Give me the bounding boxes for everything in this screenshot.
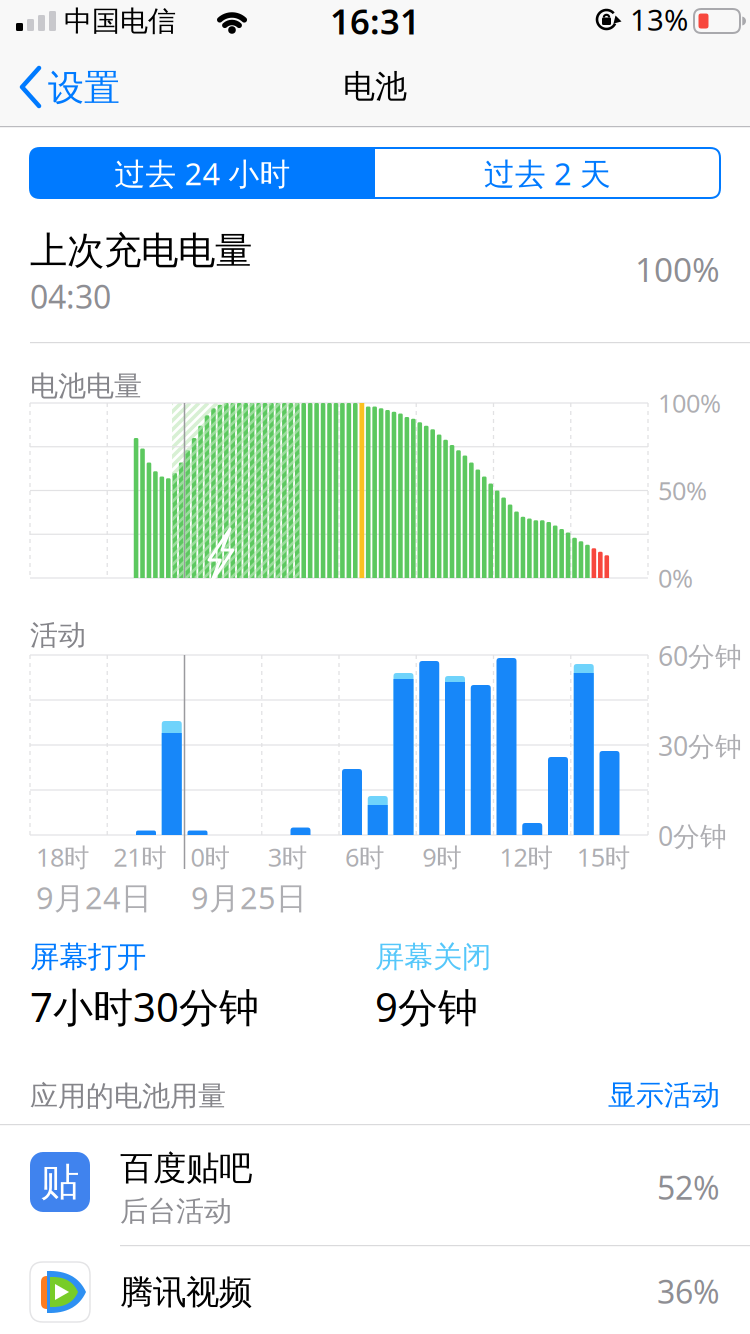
staticText: 30分钟 (658, 728, 742, 763)
staticText: 中国电信 (64, 4, 176, 38)
staticText: 50% (658, 473, 707, 507)
staticText: 0分钟 (658, 818, 727, 853)
staticText: 9月25日 (191, 877, 307, 918)
staticText: 04:30 (30, 275, 111, 317)
staticText: 0% (658, 561, 693, 595)
staticText: 3时 (268, 840, 307, 874)
staticText: 屏幕打开 (30, 939, 146, 975)
staticText: 100% (635, 247, 720, 291)
staticText: 0时 (190, 840, 229, 874)
staticText: 60分钟 (658, 638, 742, 673)
staticText: 应用的电池用量 (30, 1079, 226, 1113)
button[interactable]: 过去 24 小时 (30, 148, 375, 198)
staticText: 后台活动 (120, 1194, 232, 1228)
staticText: 13% (630, 0, 688, 39)
staticText: 上次充电电量 (30, 228, 252, 274)
staticText: 7小时30分钟 (30, 980, 259, 1033)
staticText: 贴 (40, 1158, 79, 1206)
button[interactable]: 过去 2 天 (375, 148, 720, 198)
staticText: 21时 (113, 840, 166, 874)
staticText: 设置 (48, 66, 120, 110)
button[interactable]: 设置 (0, 0, 140, 120)
staticText: 9分钟 (375, 980, 478, 1033)
staticText: 腾讯视频 (120, 1272, 252, 1313)
staticText: 18时 (36, 840, 89, 874)
staticText: 9时 (422, 840, 461, 874)
staticText: 100% (658, 386, 721, 420)
staticText: 52% (657, 1166, 720, 1208)
staticText: 活动 (30, 618, 86, 652)
staticText: 36% (657, 1270, 720, 1312)
staticText: 15时 (577, 840, 630, 874)
staticText: 百度贴吧 (120, 1148, 252, 1189)
staticText: 显示活动 (608, 1078, 720, 1112)
staticText: 电池 (343, 67, 407, 106)
staticText: 9月24日 (36, 877, 152, 918)
button[interactable]: 贴 (0, 1125, 750, 1245)
staticText: 12时 (499, 840, 552, 874)
staticText: 6时 (345, 840, 384, 874)
staticText: 过去 24 小时 (114, 153, 290, 194)
staticText: 过去 2 天 (484, 153, 611, 194)
staticText: 屏幕关闭 (375, 939, 491, 975)
button[interactable]: 显示活动 (0, 0, 720, 34)
staticText: 16:31 (330, 0, 420, 44)
staticText: 电池电量 (30, 369, 142, 403)
button[interactable]: 腾讯视频 (0, 1245, 750, 1334)
